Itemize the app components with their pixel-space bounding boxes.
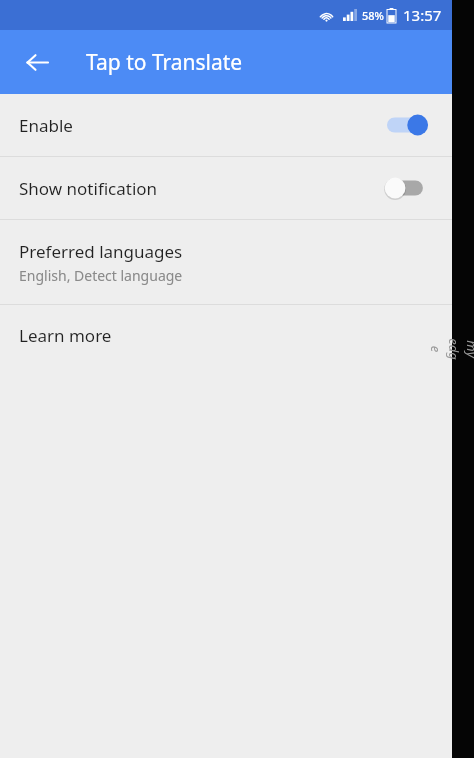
button[interactable]: Back	[13, 38, 61, 86]
button[interactable]: Preferred languages	[0, 220, 452, 304]
staticText: English, Detect language	[19, 266, 183, 285]
button[interactable]: Enable	[0, 94, 452, 156]
staticText: Enable	[19, 114, 387, 137]
staticText: 13:57	[403, 5, 442, 25]
staticText: Learn more	[19, 324, 112, 347]
staticText: Preferred languages	[19, 240, 183, 263]
staticText: Show notification	[19, 177, 387, 200]
button[interactable]: Show notification	[0, 157, 452, 219]
staticText: 58%	[362, 8, 384, 23]
button[interactable]: Learn more	[0, 305, 452, 365]
staticText: kiss my edge	[427, 338, 474, 360]
staticText: Tap to Translate	[86, 48, 243, 77]
